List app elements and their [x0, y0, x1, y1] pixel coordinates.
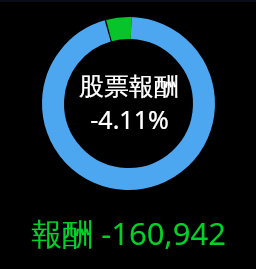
button[interactable]: 報酬 -160,942 [0, 210, 256, 256]
staticText: 報酬 -160,942 [31, 212, 226, 254]
button[interactable]: 股票報酬 -4.11% 圓環圖 [42, 17, 215, 190]
staticText: 股票報酬 [79, 71, 179, 102]
staticText: -4.11% [90, 102, 169, 136]
